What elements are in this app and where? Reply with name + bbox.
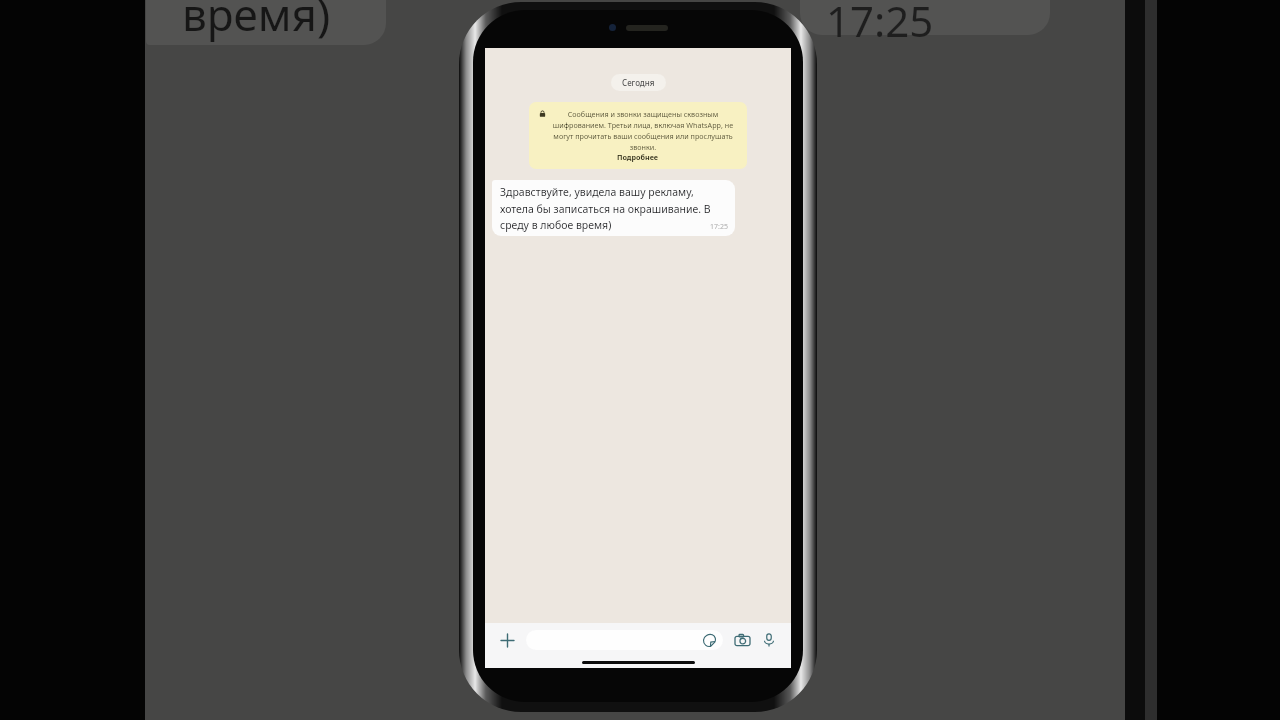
staticText: 17:25: [826, 0, 934, 49]
staticText: 17:25: [710, 222, 728, 232]
button[interactable]: Stickers: [700, 631, 718, 649]
staticText: время): [182, 0, 331, 44]
staticText: Здравствуйте, увидела вашу рекламу, хоте…: [500, 185, 728, 232]
staticText: Подробнее: [617, 152, 659, 162]
button[interactable]: Camera: [731, 629, 753, 651]
button[interactable]: Здравствуйте, увидела вашу рекламу, хоте…: [492, 180, 735, 236]
button[interactable]: Attach: [496, 629, 518, 651]
staticText: Сегодня: [622, 77, 655, 88]
button[interactable]: Stickers: [526, 630, 723, 650]
button[interactable]: Сегодня: [611, 74, 666, 91]
staticText: Сообщения и звонки защищены сквозным шиф…: [549, 109, 737, 152]
button[interactable]: Сообщения и звонки защищены сквозным шиф…: [529, 102, 747, 169]
button[interactable]: Voice message: [758, 629, 780, 651]
